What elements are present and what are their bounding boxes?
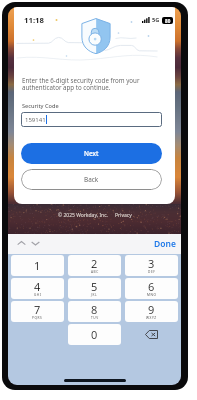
button[interactable]: 3 [125, 255, 178, 276]
button[interactable]: Next [21, 143, 162, 164]
staticText: 1 [34, 258, 41, 273]
staticText: MNO [147, 293, 157, 297]
staticText: PQRS [32, 316, 43, 320]
staticText: Enter the 6-digit security code from you… [22, 76, 155, 92]
staticText: TUV [91, 316, 99, 320]
button[interactable]: Delete [123, 323, 180, 346]
staticText: 6 [148, 279, 155, 294]
button[interactable]: 9 [125, 301, 178, 322]
button[interactable]: 1 [11, 255, 64, 276]
staticText: 8 [91, 302, 98, 317]
staticText: ABC [91, 270, 99, 274]
button[interactable]: Next field [30, 238, 41, 249]
button[interactable]: Privacy [115, 212, 132, 219]
button[interactable]: 159141 [21, 112, 162, 127]
button[interactable]: 5 [68, 278, 121, 299]
staticText: © 2025 Workday, Inc. [58, 212, 108, 219]
staticText: 5G [152, 16, 160, 24]
staticText: Back [84, 175, 99, 184]
staticText: 9 [148, 302, 155, 317]
button[interactable]: 2 [68, 255, 121, 276]
staticText: WXYZ [146, 316, 157, 320]
button[interactable]: 4 [11, 278, 64, 299]
staticText: GHI [34, 293, 42, 297]
button[interactable]: 6 [125, 278, 178, 299]
staticText: 4 [34, 279, 41, 294]
button[interactable]: Previous field [16, 238, 27, 249]
staticText: 3 [148, 256, 155, 271]
button[interactable]: Done [154, 238, 176, 250]
staticText: 80 [165, 18, 171, 24]
staticText: Next [84, 149, 99, 158]
button[interactable]: 7 [11, 301, 64, 322]
staticText: 7 [34, 302, 41, 317]
staticText: 159141 [25, 116, 46, 124]
staticText: JKL [91, 293, 98, 297]
button[interactable]: 0 [68, 324, 121, 345]
staticText: 11:18 [24, 15, 45, 26]
button[interactable]: 8 [68, 301, 121, 322]
staticText: Privacy [115, 212, 132, 219]
staticText: 2 [91, 256, 98, 271]
button[interactable]: Back [21, 169, 162, 190]
staticText: DEF [148, 270, 156, 274]
staticText: 0 [91, 327, 98, 342]
staticText: Done [154, 238, 176, 250]
staticText: 5 [91, 279, 98, 294]
staticText: Security Code [22, 102, 59, 110]
